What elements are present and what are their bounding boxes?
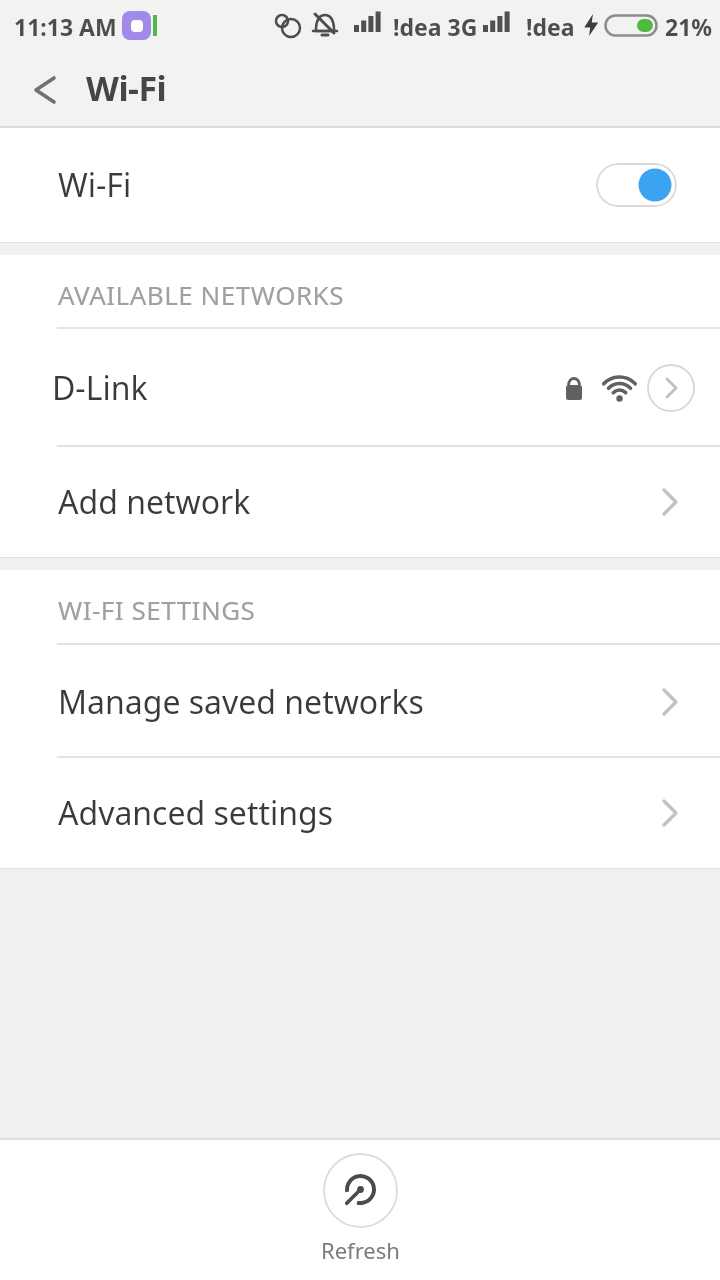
button[interactable]: Add network (0, 447, 720, 557)
staticText: !dea 3G (393, 11, 478, 42)
staticText: D-Link (52, 366, 148, 410)
staticText: AVAILABLE NETWORKS (58, 277, 344, 312)
button[interactable] (647, 364, 695, 412)
staticText: Advanced settings (58, 791, 334, 835)
button[interactable]: D-Link (0, 329, 720, 447)
button[interactable]: Wi-Fi (0, 128, 720, 242)
button[interactable]: Refresh (321, 1138, 400, 1265)
button[interactable]: Manage saved networks (0, 645, 720, 758)
staticText: !dea (526, 11, 575, 42)
staticText: Refresh (321, 1235, 400, 1265)
staticText: WI-FI SETTINGS (58, 592, 256, 627)
button[interactable] (0, 52, 76, 128)
staticText: Add network (58, 480, 251, 524)
staticText: 11:13 AM (14, 11, 117, 42)
staticText: Manage saved networks (58, 680, 424, 724)
button[interactable]: Advanced settings (0, 758, 720, 868)
staticText: 21% (665, 11, 713, 42)
button[interactable] (596, 163, 677, 207)
staticText: Wi-Fi (86, 65, 167, 111)
staticText: Wi-Fi (58, 163, 132, 207)
